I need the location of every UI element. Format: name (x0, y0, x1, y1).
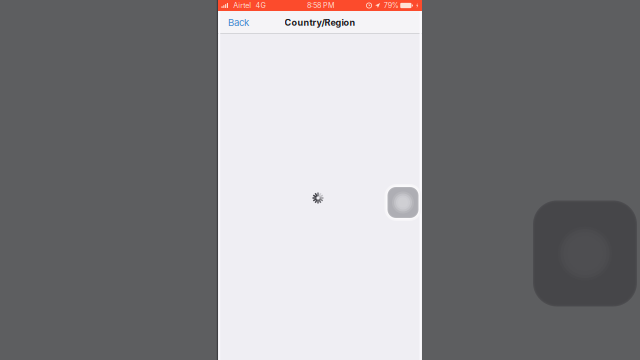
staticText: 4G (255, 1, 265, 10)
button[interactable]: AssistiveTouch (384, 184, 421, 221)
staticText: Airtel (233, 1, 251, 10)
staticText: Country/Region (284, 17, 355, 28)
staticText: 8:58 PM (307, 1, 335, 10)
button[interactable]: Back (218, 11, 257, 34)
staticText: Back (228, 17, 249, 28)
staticText: 79% (384, 1, 399, 10)
